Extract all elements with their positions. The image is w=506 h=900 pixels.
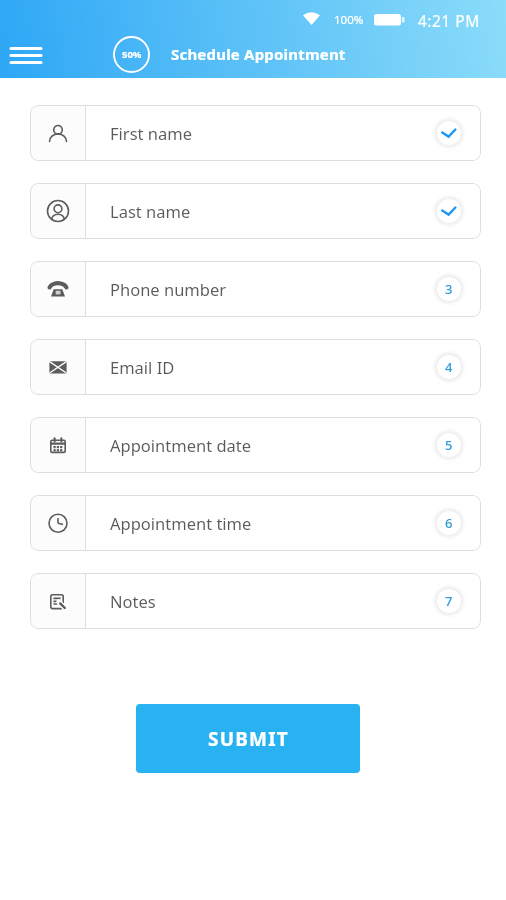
staticText: SUBMIT: [208, 726, 289, 752]
staticText: 50%: [122, 48, 142, 61]
button[interactable]: Last name: [30, 183, 481, 239]
staticText: 4:21 PM: [418, 10, 480, 31]
staticText: 4: [445, 358, 453, 376]
button[interactable]: First name: [30, 105, 481, 161]
staticText: Email ID: [110, 356, 175, 378]
staticText: Schedule Appointment: [171, 44, 346, 64]
button[interactable]: SUBMIT: [136, 704, 360, 773]
staticText: 3: [445, 280, 453, 298]
staticText: 5: [445, 436, 453, 454]
button[interactable]: Phone number: [30, 261, 481, 317]
staticText: 7: [445, 592, 453, 610]
button[interactable]: Appointment date: [30, 417, 481, 473]
button[interactable]: [6, 40, 46, 70]
button[interactable]: Notes: [30, 573, 481, 629]
staticText: Last name: [110, 200, 191, 222]
staticText: Appointment time: [110, 512, 252, 534]
button[interactable]: Email ID: [30, 339, 481, 395]
staticText: Notes: [110, 590, 156, 612]
staticText: Phone number: [110, 278, 227, 300]
staticText: First name: [110, 122, 192, 144]
staticText: 6: [445, 514, 453, 532]
button[interactable]: Appointment time: [30, 495, 481, 551]
staticText: Appointment date: [110, 434, 252, 456]
staticText: 100%: [334, 12, 364, 28]
